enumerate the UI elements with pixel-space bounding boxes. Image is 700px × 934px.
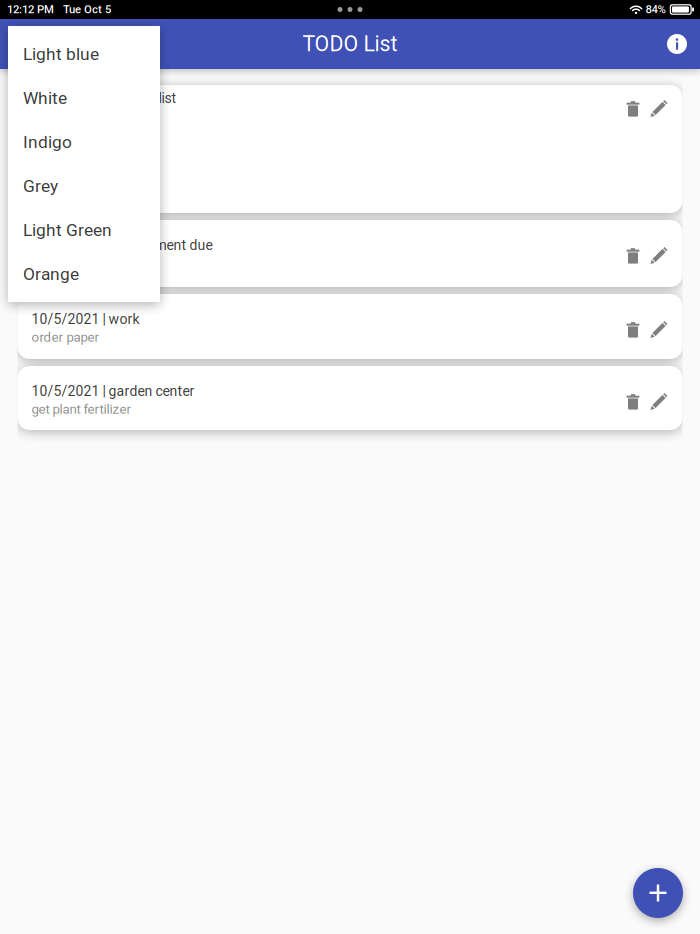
staticText: call the bank (31, 255, 103, 271)
staticText: Light blue (23, 44, 99, 64)
button[interactable]: Edit task (648, 245, 670, 267)
button[interactable]: Grey (8, 164, 160, 208)
button[interactable]: Light Green (8, 208, 160, 252)
staticText: 10/5/2021 | garden center (31, 383, 194, 399)
button[interactable]: Light blue (8, 32, 160, 76)
button[interactable]: White (8, 76, 160, 120)
button[interactable]: Edit task (648, 98, 670, 120)
staticText: order paper (31, 329, 99, 345)
staticText: Indigo (23, 132, 72, 152)
staticText: 12:12 PM (7, 3, 54, 16)
staticText: eggs (31, 126, 59, 142)
staticText: Orange (23, 264, 79, 284)
button[interactable]: Indigo (8, 120, 160, 164)
button[interactable]: Add task (633, 868, 683, 918)
staticText: coffee (31, 179, 69, 194)
button[interactable]: Delete task (622, 245, 644, 267)
staticText: bread (31, 144, 64, 159)
button[interactable]: 10/5/2021 | car payment due (17, 220, 682, 287)
button[interactable]: Delete task (622, 98, 644, 120)
staticText: Tue Oct 5 (54, 3, 111, 16)
button[interactable]: 10/5/2021 | work (17, 294, 682, 359)
button[interactable]: 10/5/2021 | garden center (17, 366, 682, 430)
button[interactable]: Edit task (648, 391, 670, 413)
staticText: Grey (23, 176, 58, 196)
staticText: 84% (642, 3, 665, 16)
staticText: get plant fertilizer (31, 401, 131, 417)
button[interactable]: 10/5/2021 | grocery list (17, 85, 682, 213)
staticText: TODO List (302, 31, 397, 56)
staticText: Light Green (23, 220, 112, 240)
staticText: White (23, 88, 67, 108)
staticText: 10/5/2021 | car payment due (31, 237, 212, 253)
staticText: 10/5/2021 | grocery list (31, 90, 176, 106)
button[interactable]: Delete task (622, 391, 644, 413)
button[interactable]: Edit task (648, 319, 670, 341)
staticText: 10/5/2021 | work (31, 311, 139, 327)
button[interactable]: Delete task (622, 319, 644, 341)
button[interactable]: Orange (8, 252, 160, 296)
button[interactable]: Info (654, 21, 700, 67)
